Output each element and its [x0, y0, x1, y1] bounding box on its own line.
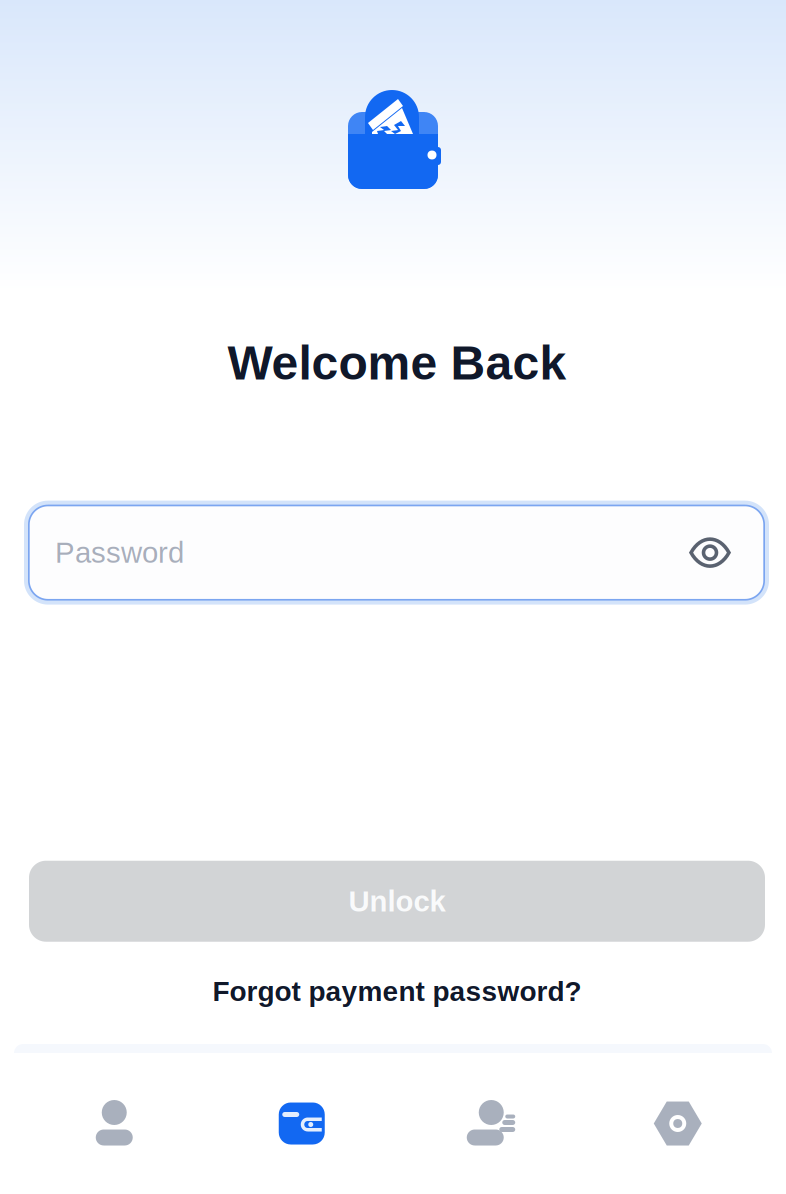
button[interactable]: Forgot payment password?	[208, 970, 577, 1013]
staticText: Unlock	[348, 885, 445, 918]
button[interactable]: Account	[0, 1097, 196, 1149]
button[interactable]: Contacts	[393, 1097, 589, 1149]
button[interactable]: Unlock	[29, 861, 765, 942]
button[interactable]: Show password	[675, 518, 745, 588]
button[interactable]: Settings	[589, 1097, 786, 1149]
button[interactable]: Wallet	[196, 1097, 393, 1149]
staticText: Forgot payment password?	[212, 976, 581, 1007]
staticText: Password	[55, 536, 184, 569]
staticText: Welcome Back	[227, 336, 566, 390]
